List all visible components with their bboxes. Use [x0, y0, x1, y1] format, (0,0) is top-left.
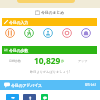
staticText: 今日のまとめ [41, 10, 65, 15]
button[interactable]: Body [43, 28, 53, 38]
button[interactable]: Share on LINE [41, 94, 48, 100]
button[interactable]: 今日の歩数 [4, 46, 97, 54]
button[interactable]: 今日のアドバイス [4, 80, 96, 90]
staticText: アップ [78, 59, 88, 63]
button[interactable]: Exercise [24, 28, 34, 38]
staticText: 目標歩数 [9, 59, 21, 63]
staticText: 8/5 (水) [85, 83, 96, 87]
button[interactable]: 今日の入力 [4, 18, 97, 26]
button[interactable]: Share on Facebook [23, 94, 36, 100]
button[interactable]: Weight [62, 28, 72, 38]
button[interactable]: Share on Twitter [6, 94, 19, 100]
staticText: 10,829 [34, 55, 61, 65]
staticText: 今日の入力 [9, 20, 29, 25]
staticText: 今日のアドバイス [11, 83, 42, 88]
staticText: 今日の歩数 [9, 48, 29, 53]
button[interactable]: Meals [5, 28, 15, 38]
staticText: 歩 [61, 59, 65, 63]
button[interactable]: Sleep [81, 28, 91, 38]
staticText: 昨日よりがんばりましょう! [0, 70, 100, 74]
